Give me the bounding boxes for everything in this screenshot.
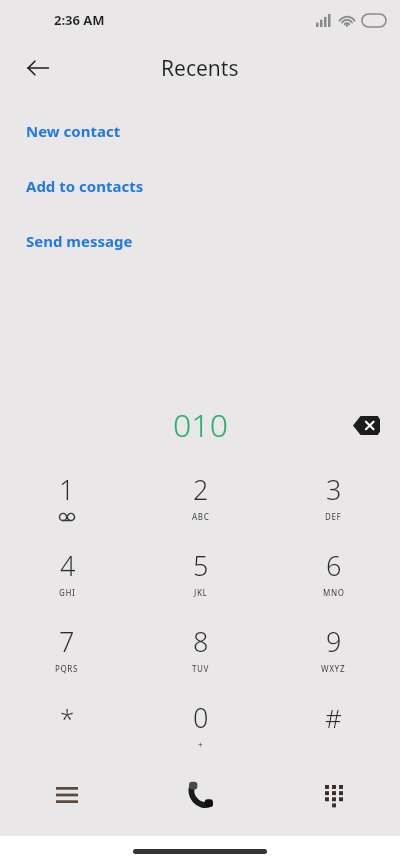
button[interactable]: Send message: [0, 213, 400, 268]
button[interactable]: 3: [267, 462, 400, 538]
button[interactable]: 7: [0, 614, 134, 690]
staticText: 7: [59, 623, 75, 660]
button[interactable]: *: [0, 690, 134, 766]
button[interactable]: 9: [267, 614, 400, 690]
staticText: 8: [193, 623, 209, 660]
button[interactable]: 0: [134, 690, 267, 766]
staticText: Recents: [161, 54, 239, 83]
button[interactable]: 2: [134, 462, 267, 538]
button[interactable]: New contact: [0, 103, 400, 158]
button[interactable]: Menu: [0, 760, 134, 830]
staticText: ABC: [192, 511, 210, 522]
button[interactable]: #: [267, 690, 400, 766]
staticText: 0: [193, 699, 209, 736]
button[interactable]: Add to contacts: [0, 158, 400, 213]
button[interactable]: 5: [134, 538, 267, 614]
button[interactable]: 6: [267, 538, 400, 614]
staticText: TUV: [192, 663, 210, 674]
staticText: PQRS: [55, 663, 79, 674]
staticText: Send message: [26, 231, 133, 251]
staticText: GHI: [59, 587, 76, 598]
staticText: *: [60, 700, 75, 735]
staticText: +: [198, 739, 204, 750]
button[interactable]: 1: [0, 462, 134, 538]
button[interactable]: Back: [14, 44, 62, 92]
staticText: 1: [59, 471, 75, 508]
button[interactable]: 8: [134, 614, 267, 690]
staticText: #: [325, 700, 342, 735]
staticText: 6: [326, 547, 342, 584]
staticText: 9: [326, 623, 342, 660]
staticText: 5: [193, 547, 209, 584]
staticText: 2:36 AM: [54, 11, 105, 29]
staticText: Add to contacts: [26, 176, 144, 196]
staticText: WXYZ: [321, 663, 346, 674]
button[interactable]: Dialpad: [267, 760, 400, 830]
staticText: New contact: [26, 121, 121, 141]
staticText: 010: [173, 403, 228, 447]
staticText: JKL: [194, 587, 208, 598]
button[interactable]: Backspace: [344, 403, 388, 447]
button[interactable]: Call: [134, 760, 267, 830]
staticText: MNO: [323, 587, 345, 598]
staticText: DEF: [325, 511, 342, 522]
button[interactable]: 4: [0, 538, 134, 614]
staticText: 3: [326, 471, 342, 508]
staticText: 2: [193, 471, 209, 508]
staticText: 4: [60, 547, 76, 584]
